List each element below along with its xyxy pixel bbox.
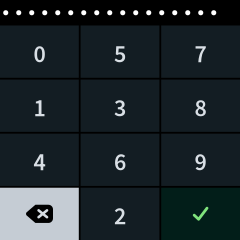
button[interactable]: 2	[81, 188, 159, 240]
staticText: 4	[33, 146, 45, 180]
staticText: 0	[33, 37, 45, 72]
button[interactable]: Confirm passcode	[161, 188, 240, 240]
button[interactable]: 9	[161, 134, 240, 186]
staticText: 7	[195, 37, 207, 72]
button[interactable]: 0	[0, 25, 79, 78]
button[interactable]: Delete	[0, 188, 79, 240]
staticText: 9	[195, 146, 207, 180]
button[interactable]: 1	[0, 80, 79, 132]
staticText: 5	[114, 37, 126, 72]
button[interactable]: 6	[81, 134, 159, 186]
staticText: 1	[33, 92, 45, 126]
staticText: 6	[114, 146, 126, 180]
button[interactable]: 4	[0, 134, 79, 186]
staticText: 8	[195, 92, 207, 126]
button[interactable]: 8	[161, 80, 240, 132]
button[interactable]: 7	[161, 25, 240, 78]
staticText: 2	[114, 200, 126, 234]
staticText: 3	[114, 92, 126, 126]
button[interactable]: 5	[81, 25, 159, 78]
button[interactable]: 3	[81, 80, 159, 132]
